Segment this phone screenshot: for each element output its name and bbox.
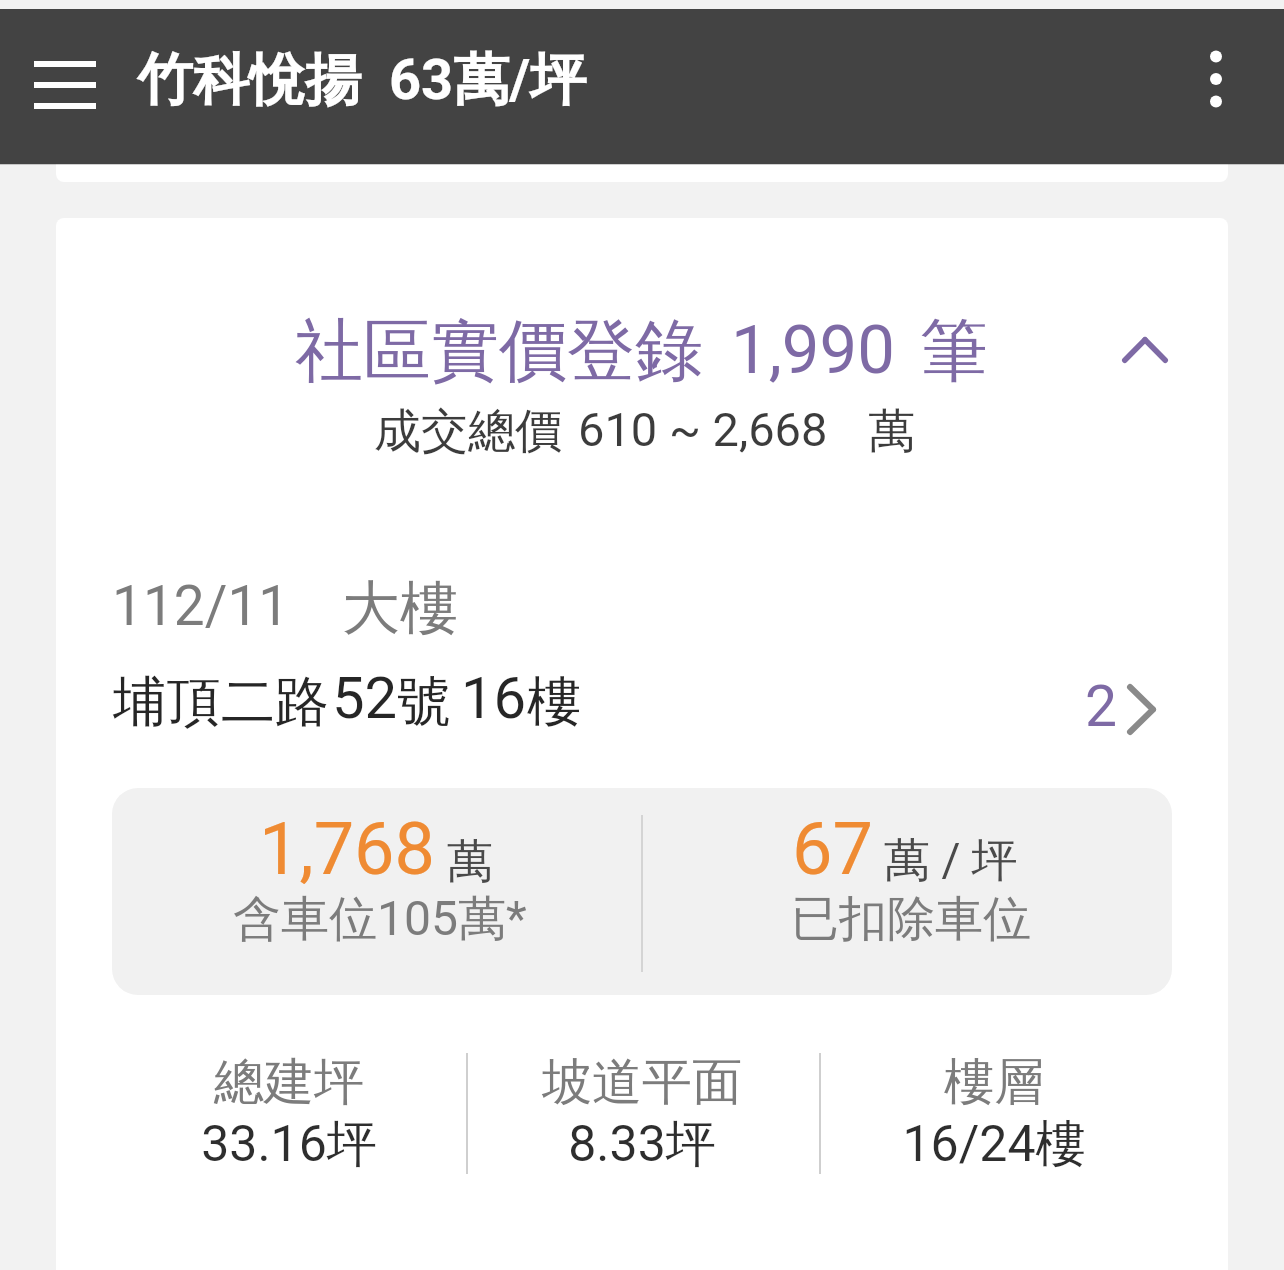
- staticText: 樓: [527, 668, 581, 736]
- staticText: 萬 / 坪: [884, 832, 1018, 890]
- staticText: 112/11: [112, 574, 290, 638]
- staticText: 610 ~ 2,668: [578, 402, 828, 457]
- staticText: 52: [332, 664, 398, 732]
- staticText: 埔頂二路: [113, 668, 329, 736]
- staticText: 號: [397, 668, 451, 736]
- staticText: 竹科悅揚 63萬/坪: [137, 45, 587, 116]
- staticText: 16/24樓: [794, 1113, 1194, 1176]
- staticText: 樓層: [794, 1051, 1194, 1114]
- staticText: 大樓: [342, 572, 458, 645]
- staticText: 2: [1085, 673, 1118, 740]
- staticText: 坡道平面: [442, 1051, 842, 1114]
- button[interactable]: Menu: [10, 37, 120, 137]
- staticText: 總建坪: [89, 1051, 489, 1114]
- staticText: 16: [461, 664, 527, 732]
- staticText: 萬: [868, 402, 915, 461]
- staticText: 33.16坪: [89, 1113, 489, 1176]
- button[interactable]: [56, 268, 1228, 508]
- staticText: 含車位105萬*: [233, 889, 527, 949]
- button[interactable]: [56, 660, 1228, 756]
- staticText: 已扣除車位: [791, 889, 1031, 949]
- staticText: 社區實價登錄: [295, 309, 703, 395]
- button[interactable]: More options: [1166, 21, 1266, 152]
- staticText: 8.33坪: [442, 1113, 842, 1176]
- staticText: 1,990: [731, 311, 895, 390]
- staticText: 成交總價: [374, 402, 562, 461]
- staticText: 萬: [447, 833, 493, 891]
- staticText: 1,768: [259, 807, 436, 891]
- staticText: 67: [792, 807, 873, 891]
- staticText: 筆: [920, 309, 988, 395]
